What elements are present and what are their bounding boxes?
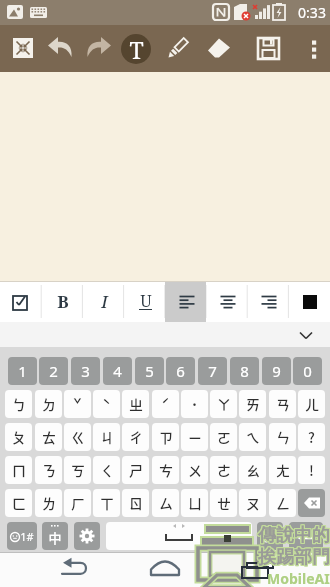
- button[interactable]: 1: [8, 357, 37, 385]
- staticText: ㄌ: [42, 493, 56, 513]
- button[interactable]: [110, 552, 220, 587]
- button[interactable]: [220, 552, 330, 587]
- button[interactable]: ˇ: [64, 390, 91, 418]
- button[interactable]: ㄠ: [239, 456, 266, 484]
- button[interactable]: ㄏ: [64, 489, 91, 517]
- button[interactable]: T: [121, 34, 151, 64]
- button[interactable]: 6: [166, 357, 195, 385]
- button[interactable]: ㄒ: [93, 489, 120, 517]
- button[interactable]: I: [84, 281, 125, 322]
- staticText: ㄥ: [276, 493, 290, 513]
- button[interactable]: 0: [293, 357, 322, 385]
- button[interactable]: 中: [42, 522, 68, 550]
- button[interactable]: ㄑ: [93, 456, 120, 484]
- button[interactable]: ㄐ: [93, 423, 120, 451]
- button[interactable]: 3: [71, 357, 100, 385]
- button[interactable]: 2: [39, 357, 68, 385]
- button[interactable]: ㄓ: [122, 390, 149, 418]
- button[interactable]: [74, 522, 100, 550]
- button[interactable]: ㄛ: [210, 423, 237, 451]
- staticText: ㄨ: [188, 460, 202, 480]
- button[interactable]: [248, 281, 289, 322]
- staticText: 3: [81, 361, 90, 381]
- button[interactable]: ㄩ: [181, 489, 208, 517]
- button[interactable]: ㄜ: [210, 456, 237, 484]
- button[interactable]: 4: [103, 357, 132, 385]
- button[interactable]: ˋ: [93, 390, 120, 418]
- button[interactable]: [298, 489, 325, 517]
- button[interactable]: [0, 552, 110, 587]
- button[interactable]: [166, 281, 207, 322]
- button[interactable]: ˊ: [152, 390, 179, 418]
- button[interactable]: 1#: [7, 522, 37, 550]
- button[interactable]: ˙: [181, 390, 208, 418]
- button[interactable]: [205, 35, 233, 63]
- button[interactable]: ㄗ: [152, 423, 179, 451]
- staticText: 8: [240, 361, 249, 381]
- button[interactable]: 7: [198, 357, 227, 385]
- button[interactable]: ㄞ: [239, 390, 266, 418]
- button[interactable]: [257, 522, 283, 550]
- staticText: ㄒ: [100, 493, 114, 513]
- button[interactable]: 9: [262, 357, 291, 385]
- staticText: ㄢ: [276, 394, 290, 414]
- button[interactable]: ㄎ: [64, 456, 91, 484]
- button[interactable]: ㄡ: [239, 489, 266, 517]
- button[interactable]: [289, 281, 330, 322]
- staticText: ㄩ: [188, 493, 202, 513]
- button[interactable]: ㄍ: [64, 423, 91, 451]
- button[interactable]: ㄈ: [5, 489, 32, 517]
- staticText: 9: [272, 361, 281, 381]
- button[interactable]: ㄨ: [181, 456, 208, 484]
- button[interactable]: [8, 34, 38, 64]
- button[interactable]: [289, 522, 323, 550]
- button[interactable]: [106, 522, 252, 550]
- button[interactable]: ㄉ: [35, 390, 62, 418]
- button[interactable]: ㄥ: [269, 489, 296, 517]
- button[interactable]: ㄋ: [35, 456, 62, 484]
- button[interactable]: [86, 36, 112, 62]
- button[interactable]: ㄧ: [181, 423, 208, 451]
- button[interactable]: [255, 35, 282, 62]
- button[interactable]: [163, 35, 191, 63]
- button[interactable]: ㄊ: [35, 423, 62, 451]
- button[interactable]: ㄅ: [5, 390, 32, 418]
- button[interactable]: ㄚ: [210, 390, 237, 418]
- button[interactable]: ㄘ: [152, 456, 179, 484]
- button[interactable]: [48, 36, 74, 62]
- button[interactable]: [302, 37, 326, 61]
- button[interactable]: !: [298, 456, 325, 484]
- button[interactable]: [207, 281, 248, 322]
- button[interactable]: 8: [230, 357, 259, 385]
- button[interactable]: ㄢ: [269, 390, 296, 418]
- button[interactable]: U: [125, 281, 166, 322]
- button[interactable]: B: [42, 281, 84, 322]
- button[interactable]: ㄙ: [152, 489, 179, 517]
- button[interactable]: ㄔ: [122, 423, 149, 451]
- staticText: 傳說中的: [257, 523, 329, 546]
- button[interactable]: [0, 281, 42, 322]
- staticText: ㄐ: [100, 427, 114, 447]
- button[interactable]: ㄝ: [210, 489, 237, 517]
- staticText: ㄇ: [12, 460, 26, 480]
- button[interactable]: ?: [298, 423, 325, 451]
- staticText: ˊ: [161, 394, 170, 414]
- button[interactable]: ㄤ: [269, 456, 296, 484]
- button[interactable]: ㄆ: [5, 423, 32, 451]
- staticText: 傳說中的: [258, 525, 330, 548]
- button[interactable]: ㄌ: [35, 489, 62, 517]
- button[interactable]: ㄣ: [269, 423, 296, 451]
- staticText: !: [309, 460, 314, 480]
- button[interactable]: 5: [135, 357, 164, 385]
- button[interactable]: ㄇ: [5, 456, 32, 484]
- staticText: 0: [303, 361, 312, 381]
- staticText: ㄔ: [129, 427, 143, 447]
- staticText: ㄝ: [217, 493, 231, 513]
- button[interactable]: ㄖ: [122, 489, 149, 517]
- button[interactable]: ㄦ: [298, 390, 325, 418]
- button[interactable]: ㄕ: [122, 456, 149, 484]
- button[interactable]: ㄟ: [239, 423, 266, 451]
- staticText: 傳說中的: [258, 523, 330, 546]
- staticText: ㄉ: [42, 394, 56, 414]
- button[interactable]: [0, 322, 330, 347]
